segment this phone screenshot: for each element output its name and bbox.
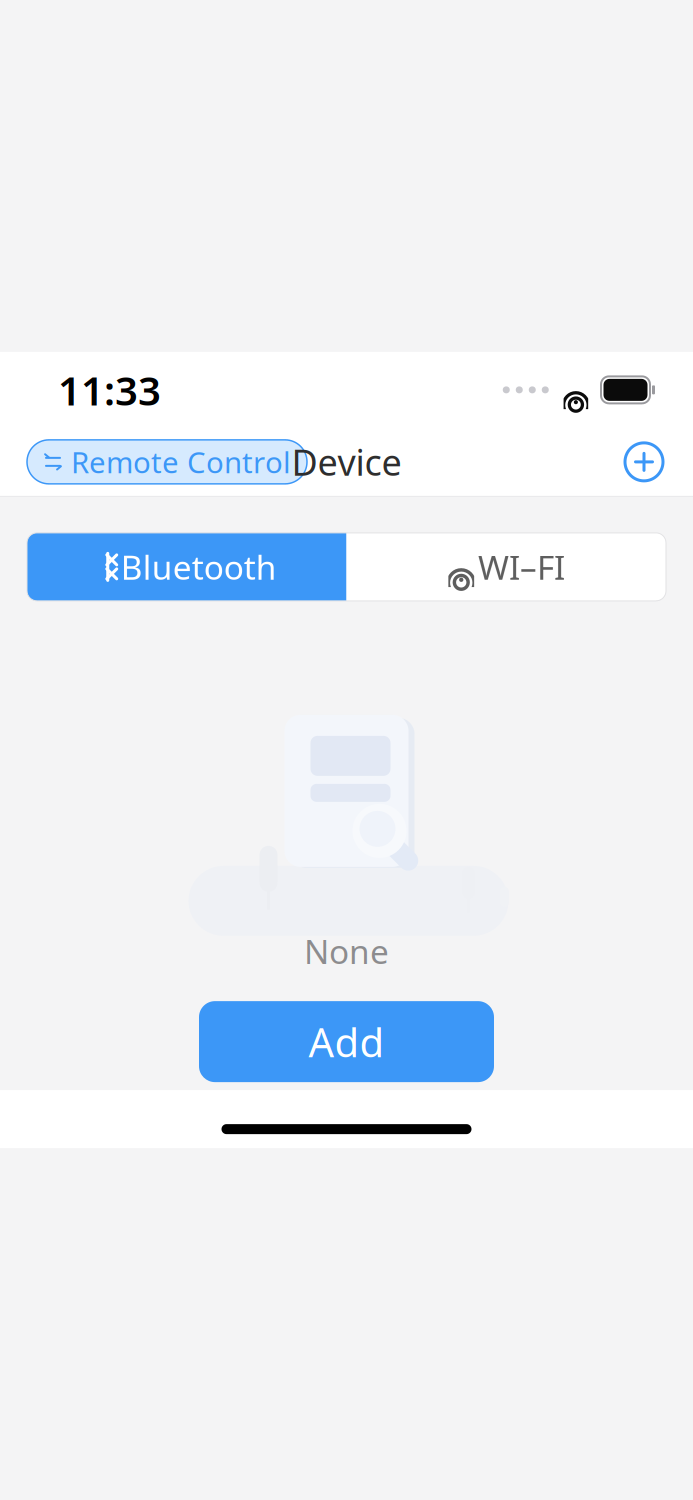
button[interactable]: Bluetooth [27, 533, 346, 601]
staticText: WI–FI [478, 545, 565, 589]
staticText: None [304, 929, 389, 973]
staticText: Bluetooth [121, 545, 277, 589]
staticText: Add [308, 1015, 384, 1068]
button[interactable]: WI–FI [346, 533, 666, 601]
button[interactable]: Remote Control [27, 440, 307, 484]
staticText: Remote Control [71, 442, 291, 481]
staticText: 11:33 [58, 363, 161, 416]
button[interactable]: Add device [622, 440, 666, 484]
staticText: Device [291, 438, 401, 486]
button[interactable]: Add [199, 1001, 494, 1082]
